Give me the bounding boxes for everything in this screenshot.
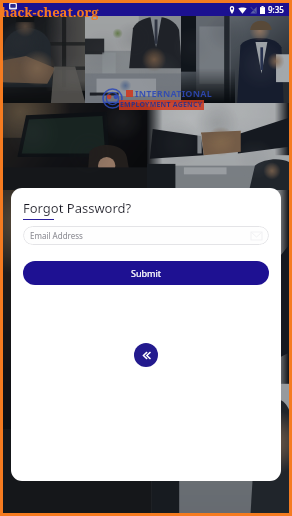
staticText: 9:35 — [268, 4, 284, 15]
staticText: EMPLOYMENT AGENCY — [120, 100, 203, 110]
staticText: hack-cheat.org — [1, 3, 99, 21]
staticText: Forgot Password? — [23, 199, 132, 217]
button[interactable]: Submit — [23, 261, 269, 285]
staticText: INTERNATIONAL — [135, 87, 212, 99]
button[interactable]: Back — [134, 343, 158, 367]
staticText: Submit — [131, 267, 162, 279]
button[interactable]: Email Address — [23, 226, 269, 245]
staticText: Email Address — [30, 230, 83, 241]
